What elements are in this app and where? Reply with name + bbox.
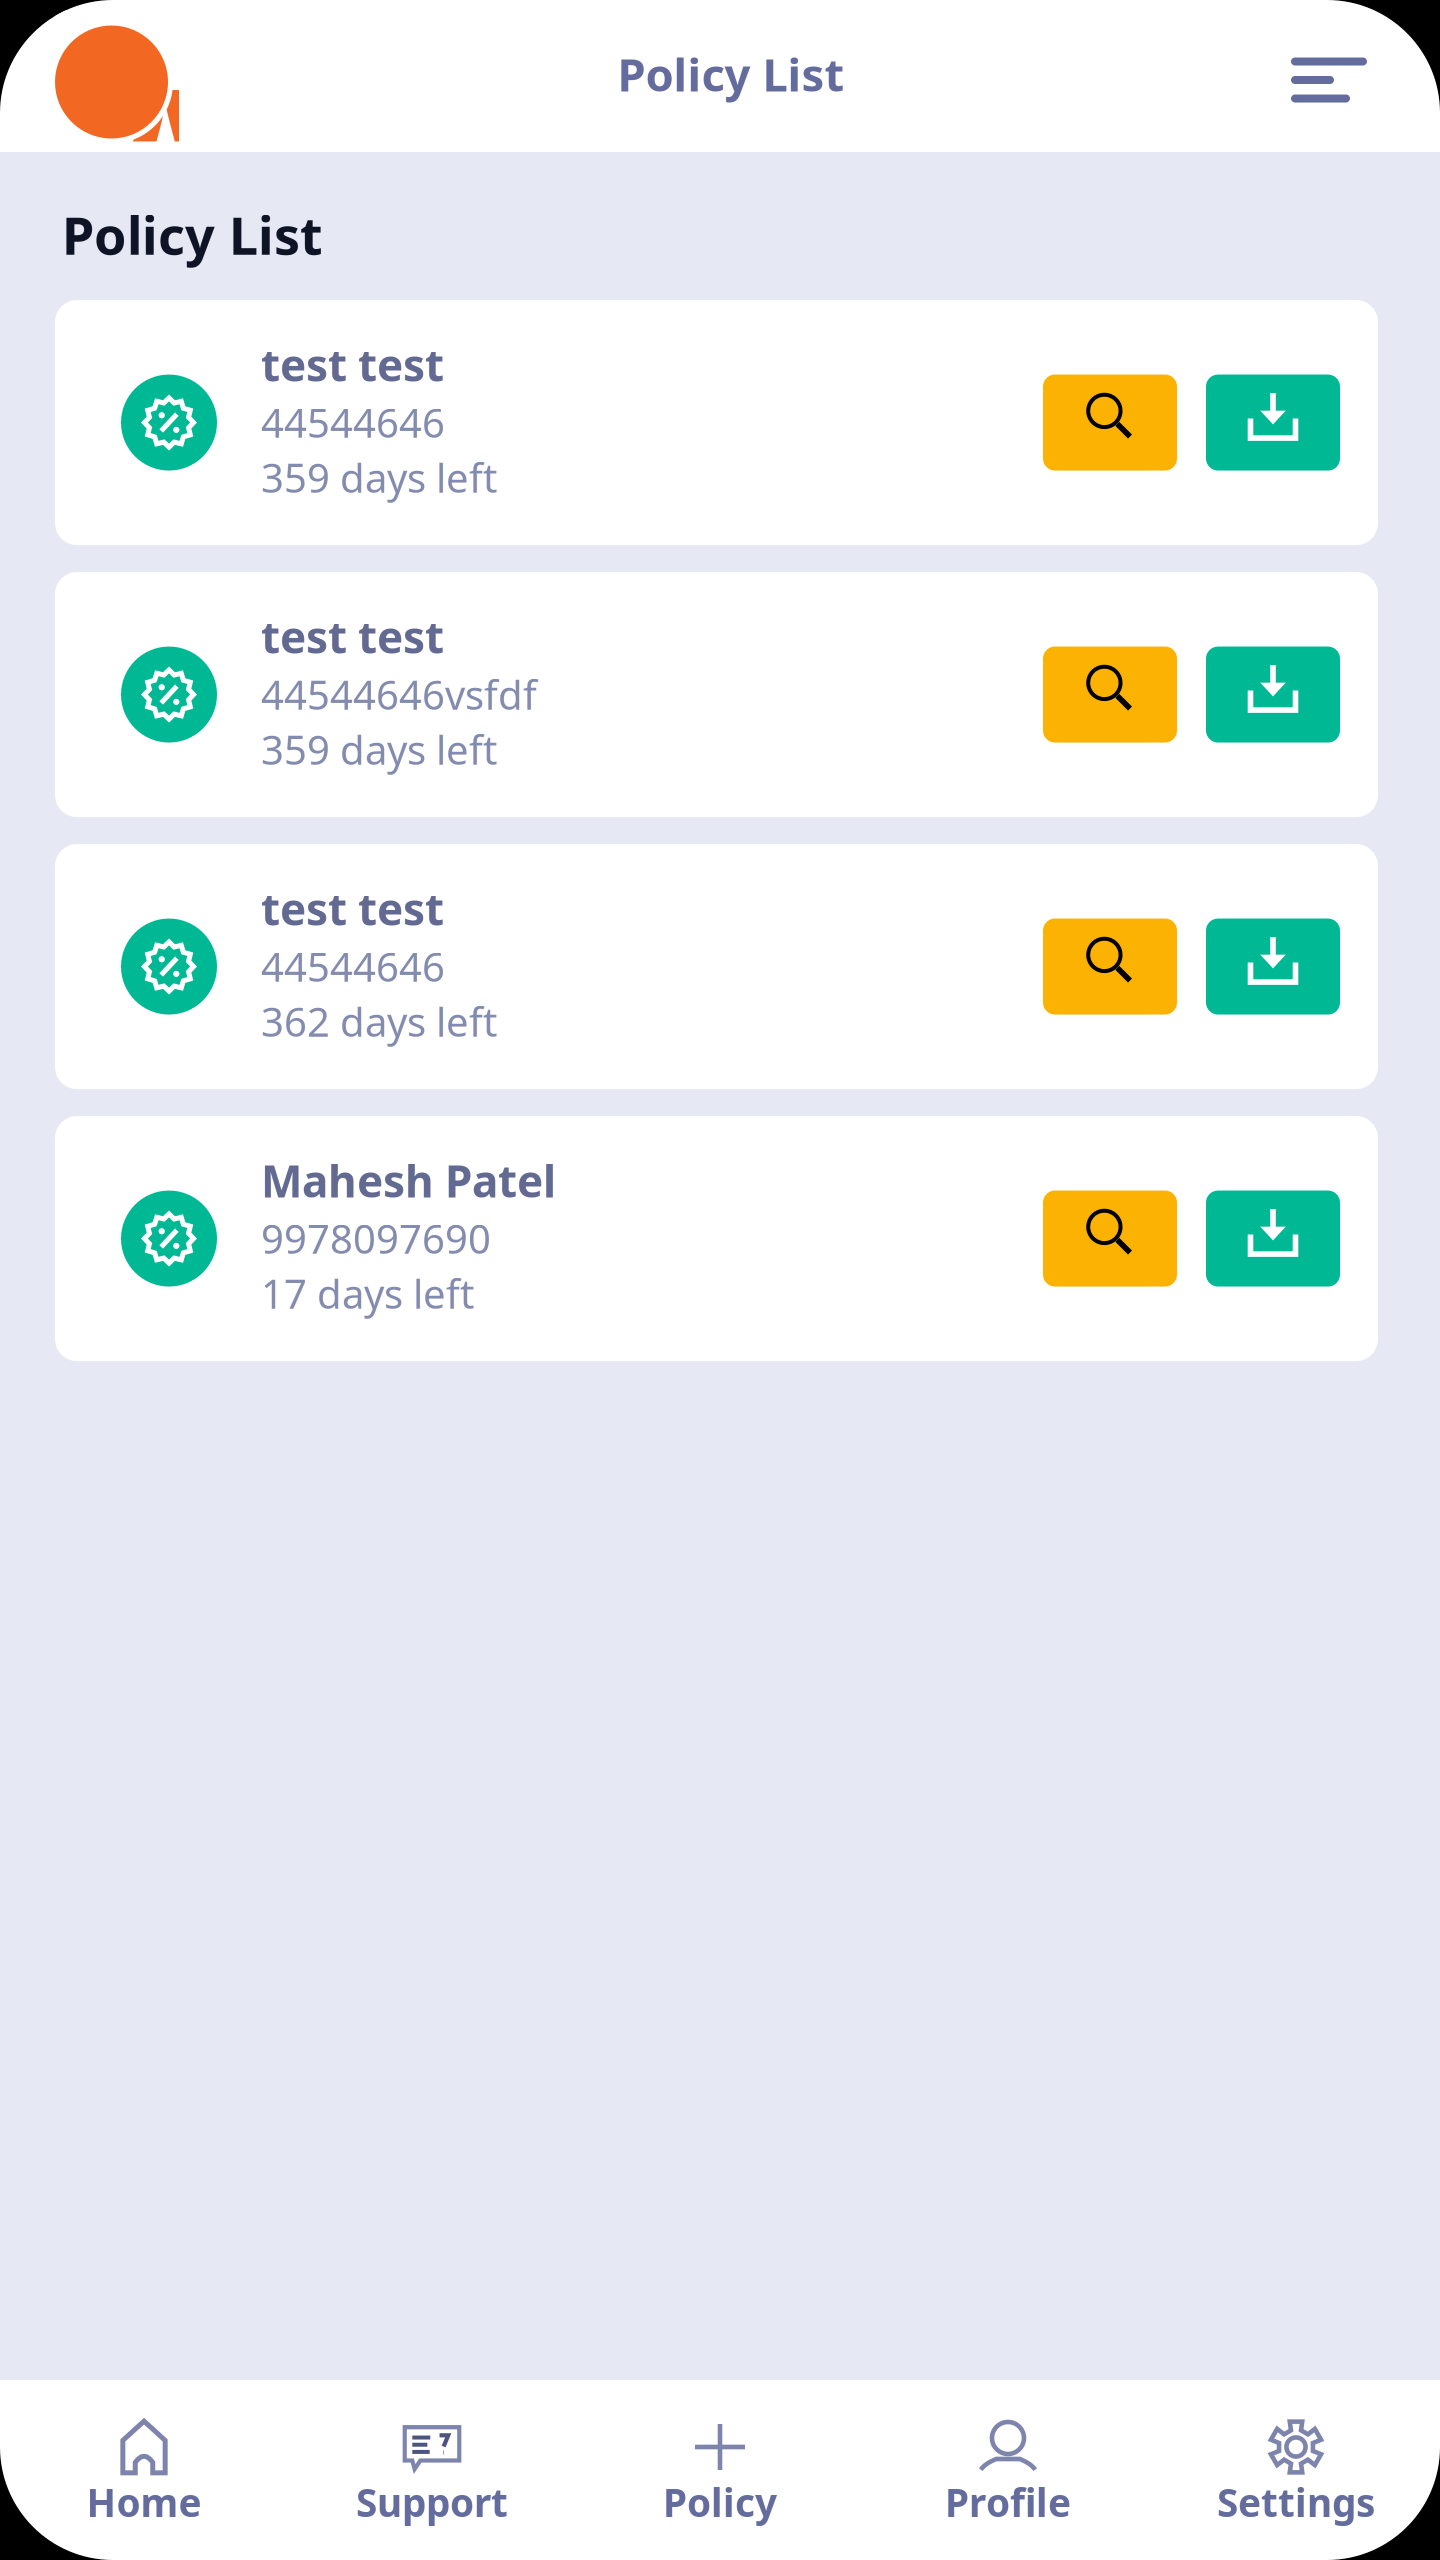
button[interactable]: Download policy (1206, 647, 1340, 743)
button[interactable]: Settings (1152, 2380, 1440, 2560)
button[interactable]: View policy (1043, 1191, 1177, 1287)
button[interactable]: View policy (1043, 647, 1177, 743)
staticText: Settings (1217, 2476, 1375, 2528)
staticText: Mahesh Patel (261, 1151, 556, 1210)
staticText: 44544646 (261, 940, 445, 993)
staticText: test test (261, 335, 444, 394)
staticText: Home (86, 2476, 201, 2528)
button[interactable]: Download policy (1206, 375, 1340, 471)
staticText: Policy List (62, 200, 323, 269)
button[interactable]: Policy (576, 2380, 864, 2560)
staticText: 362 days left (261, 995, 497, 1048)
staticText: 359 days left (261, 451, 497, 504)
button[interactable]: Download policy (1206, 919, 1340, 1015)
staticText: Support (356, 2476, 508, 2528)
staticText: Profile (945, 2476, 1071, 2528)
button[interactable]: Support (288, 2380, 576, 2560)
button[interactable]: Mahesh Patel (55, 1116, 1043, 1361)
staticText: test test (261, 607, 444, 666)
staticText: 359 days left (261, 723, 497, 776)
staticText: 44544646vsfdf (261, 668, 537, 721)
staticText: A (121, 48, 210, 211)
button[interactable]: Menu (1267, 33, 1440, 118)
staticText: 44544646 (261, 396, 445, 449)
button[interactable]: test test (55, 300, 1043, 545)
staticText: test test (261, 879, 444, 938)
staticText: 17 days left (261, 1267, 474, 1320)
staticText: Policy List (617, 44, 844, 104)
staticText: 9978097690 (261, 1212, 491, 1265)
staticText: Policy (663, 2476, 777, 2528)
button[interactable]: Download policy (1206, 1191, 1340, 1287)
button[interactable]: Home (0, 2380, 288, 2560)
button[interactable]: test test (55, 572, 1043, 817)
button[interactable]: View policy (1043, 919, 1177, 1015)
button[interactable]: View policy (1043, 375, 1177, 471)
button[interactable]: test test (55, 844, 1043, 1089)
button[interactable]: Profile (864, 2380, 1152, 2560)
